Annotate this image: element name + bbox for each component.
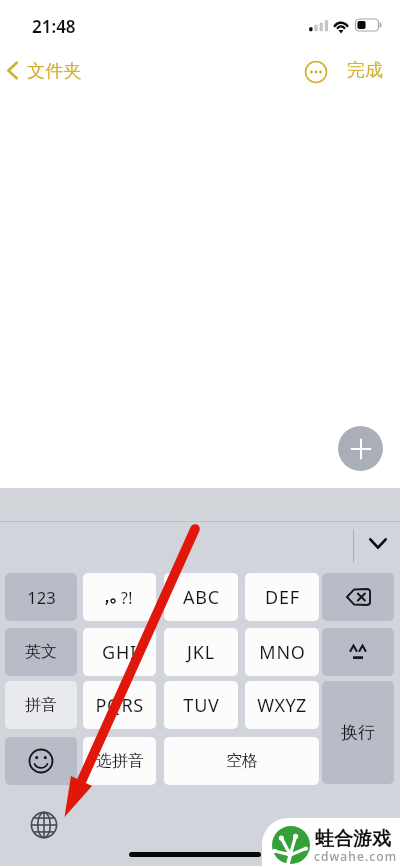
button[interactable]: 拼音 <box>5 681 77 729</box>
button[interactable]: WXYZ <box>245 681 319 729</box>
button[interactable]: 换行 <box>322 681 394 784</box>
button[interactable]: 完成 <box>343 56 387 84</box>
staticText: 完成 <box>347 59 383 82</box>
staticText: ABC <box>183 585 220 610</box>
staticText: DEF <box>265 585 300 610</box>
staticText: ?! <box>121 587 133 608</box>
staticText: 空格 <box>226 751 258 771</box>
staticText: TUV <box>183 693 220 718</box>
button[interactable]: Add <box>338 426 383 471</box>
button[interactable]: Emoji <box>5 737 77 785</box>
button[interactable]: More options <box>301 57 331 87</box>
button[interactable]: 123 <box>5 573 77 621</box>
button[interactable]: 选拼音 <box>83 737 156 785</box>
staticText: 蛙合游戏 <box>315 827 391 851</box>
staticText: 21:48 <box>32 15 76 38</box>
staticText: 拼音 <box>25 695 57 715</box>
staticText: 英文 <box>25 642 57 662</box>
button[interactable]: MNO <box>245 628 319 676</box>
button[interactable]: Hide keyboard <box>361 527 394 560</box>
staticText: 文件夹 <box>27 59 82 82</box>
staticText: GHI <box>102 640 137 665</box>
button[interactable]: JKL <box>164 628 238 676</box>
staticText: 选拼音 <box>96 751 144 771</box>
button[interactable]: ABC <box>164 573 238 621</box>
staticText: PQRS <box>95 693 144 718</box>
staticText: WXYZ <box>257 693 307 718</box>
button[interactable]: 文件夹 <box>0 59 92 82</box>
staticText: JKL <box>187 640 215 665</box>
staticText: 换行 <box>341 722 375 743</box>
button[interactable]: 英文 <box>5 628 77 676</box>
button[interactable]: 空格 <box>164 737 319 785</box>
staticText: 123 <box>27 586 56 608</box>
button[interactable]: PQRS <box>83 681 156 729</box>
button[interactable]: Emoticon <box>322 628 394 676</box>
button[interactable]: GHI <box>83 628 156 676</box>
staticText: cdwahe.com <box>314 848 398 864</box>
button[interactable]: Change keyboard <box>30 811 58 839</box>
button[interactable]: Backspace <box>322 573 394 621</box>
staticText: MNO <box>259 640 306 665</box>
button[interactable]: TUV <box>164 681 238 729</box>
button[interactable]: ?! <box>83 573 156 621</box>
button[interactable]: DEF <box>245 573 319 621</box>
